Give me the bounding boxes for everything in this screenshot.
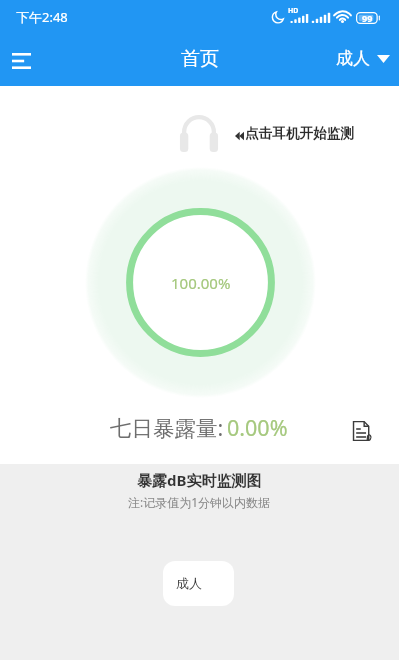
staticText: 暴露dB实时监测图 — [137, 470, 262, 490]
button[interactable]: Report — [346, 416, 376, 446]
staticText: 成人 — [336, 48, 370, 69]
staticText: HD — [288, 6, 299, 16]
button[interactable]: 成人 — [324, 40, 399, 77]
button[interactable]: 成人 — [163, 561, 234, 606]
button[interactable]: 点击耳机开始监测 — [182, 115, 354, 152]
staticText: 成人 — [176, 575, 202, 591]
staticText: 99 — [362, 12, 373, 24]
staticText: 首页 — [181, 47, 219, 71]
staticText: 下午2:48 — [16, 8, 68, 26]
staticText: 七日暴露量: — [110, 413, 224, 442]
staticText: 100.00% — [171, 273, 231, 293]
staticText: 点击耳机开始监测 — [245, 125, 354, 142]
button[interactable]: Menu — [0, 37, 45, 85]
staticText: 0.00% — [227, 413, 288, 442]
staticText: 注:记录值为1分钟以内数据 — [128, 494, 271, 510]
